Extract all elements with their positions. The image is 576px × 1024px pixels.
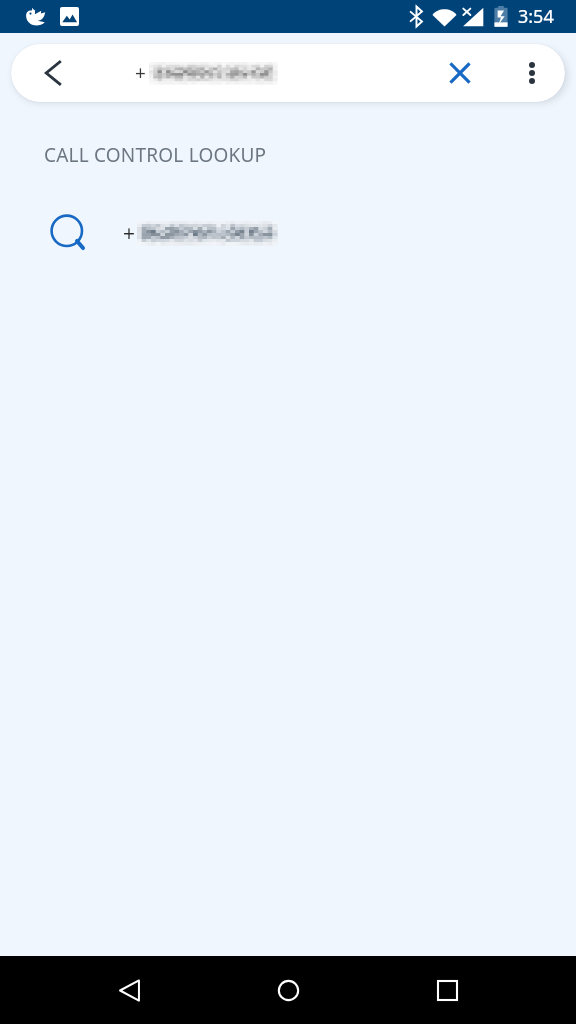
button[interactable]: Recent apps xyxy=(411,956,483,1024)
button[interactable]: Back xyxy=(93,956,165,1024)
button[interactable]: Clear xyxy=(418,44,502,102)
staticText: 3:54 xyxy=(518,4,554,29)
button[interactable]: + xyxy=(0,205,576,261)
button[interactable]: Back xyxy=(11,44,94,102)
button[interactable]: Home xyxy=(252,956,324,1024)
staticText: + xyxy=(123,219,136,248)
staticText: CALL CONTROL LOOKUP xyxy=(44,142,267,168)
staticText: + xyxy=(135,60,146,86)
button[interactable]: More options xyxy=(502,44,562,102)
